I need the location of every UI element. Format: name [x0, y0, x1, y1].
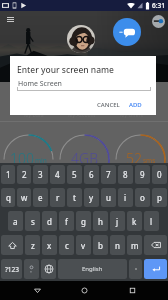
- button[interactable]: 6: [84, 165, 99, 184]
- button[interactable]: 2: [17, 165, 31, 184]
- staticText: 4: [55, 169, 60, 180]
- button[interactable]: Change language: [41, 259, 56, 279]
- button[interactable]: Home: [73, 281, 95, 300]
- staticText: l: [150, 216, 153, 227]
- button[interactable]: Space: [58, 259, 127, 279]
- staticText: 6:31: [152, 1, 165, 10]
- staticText: 8: [123, 169, 128, 180]
- button[interactable]: m: [127, 235, 142, 255]
- staticText: c: [65, 240, 69, 251]
- staticText: 5: [72, 169, 77, 180]
- staticText: p: [157, 192, 162, 203]
- button[interactable]: d: [42, 211, 57, 231]
- button[interactable]: k: [127, 211, 142, 231]
- button[interactable]: Period: [129, 259, 142, 279]
- button[interactable]: r: [50, 188, 65, 207]
- staticText: 6: [89, 169, 94, 180]
- staticText: English: [82, 265, 103, 273]
- button[interactable]: Symbols: [1, 259, 22, 279]
- staticText: 0: [157, 169, 162, 180]
- button[interactable]: y: [84, 188, 99, 207]
- staticText: d: [47, 216, 52, 227]
- button[interactable]: q: [1, 188, 15, 207]
- button[interactable]: h: [93, 211, 108, 231]
- staticText: 4GB: [71, 149, 98, 168]
- button[interactable]: 8: [118, 165, 133, 184]
- staticText: Home Screen: [18, 79, 62, 89]
- staticText: x: [47, 240, 52, 251]
- button[interactable]: Settings: [152, 15, 165, 28]
- button[interactable]: 3: [33, 165, 48, 184]
- button[interactable]: Back: [26, 281, 48, 300]
- button[interactable]: 52: [114, 135, 167, 165]
- staticText: 2: [22, 169, 27, 180]
- staticText: w: [21, 192, 28, 203]
- staticText: i: [124, 192, 127, 203]
- button[interactable]: Comma and emoji: [24, 259, 39, 279]
- button[interactable]: 0: [152, 165, 167, 184]
- staticText: CANCEL: [97, 101, 120, 109]
- button[interactable]: Backspace: [144, 235, 167, 255]
- staticText: q: [6, 192, 11, 203]
- staticText: sms: [143, 156, 156, 165]
- button[interactable]: b: [93, 235, 108, 255]
- button[interactable]: l: [144, 211, 159, 231]
- button[interactable]: i: [118, 188, 133, 207]
- staticText: t: [73, 192, 76, 203]
- staticText: o: [140, 192, 145, 203]
- button[interactable]: Menu: [5, 16, 16, 23]
- staticText: Enter your screen name: [17, 64, 114, 76]
- button[interactable]: 1: [1, 165, 15, 184]
- button[interactable]: x: [42, 235, 57, 255]
- button[interactable]: f: [59, 211, 74, 231]
- button[interactable]: Recent apps: [121, 281, 143, 300]
- button[interactable]: u: [101, 188, 116, 207]
- staticText: f: [65, 216, 68, 227]
- staticText: v: [81, 240, 86, 251]
- staticText: My Account: [68, 112, 96, 119]
- staticText: My Data: [24, 112, 44, 119]
- button[interactable]: 5: [67, 165, 82, 184]
- button[interactable]: p: [152, 188, 167, 207]
- staticText: e: [38, 192, 43, 203]
- button[interactable]: Profile photo: [67, 25, 95, 53]
- staticText: 52: [126, 149, 142, 168]
- button[interactable]: 9: [135, 165, 150, 184]
- button[interactable]: o: [135, 188, 150, 207]
- staticText: y: [89, 192, 94, 203]
- staticText: ?123: [5, 265, 19, 274]
- staticText: j: [116, 216, 119, 227]
- button[interactable]: Enter: [144, 259, 167, 279]
- staticText: a: [13, 216, 18, 227]
- staticText: g: [81, 216, 86, 227]
- button[interactable]: Messages: [113, 18, 141, 46]
- button[interactable]: a: [8, 211, 23, 231]
- button[interactable]: n: [110, 235, 125, 255]
- button[interactable]: 4GB: [58, 135, 111, 165]
- staticText: b: [98, 240, 103, 251]
- button[interactable]: z: [25, 235, 40, 255]
- button[interactable]: c: [59, 235, 74, 255]
- button[interactable]: 4: [50, 165, 65, 184]
- button[interactable]: 100: [2, 135, 55, 165]
- staticText: u: [106, 192, 111, 203]
- button[interactable]: v: [76, 235, 91, 255]
- button[interactable]: j: [110, 211, 125, 231]
- staticText: 1: [6, 169, 11, 180]
- button[interactable]: t: [67, 188, 82, 207]
- button[interactable]: 7: [101, 165, 116, 184]
- button[interactable]: Shift: [1, 235, 23, 255]
- button[interactable]: w: [17, 188, 31, 207]
- button[interactable]: e: [33, 188, 48, 207]
- staticText: r: [56, 192, 60, 203]
- button[interactable]: CANCEL: [93, 98, 124, 112]
- staticText: z: [31, 240, 35, 251]
- button[interactable]: s: [25, 211, 40, 231]
- button[interactable]: ADD: [125, 98, 146, 112]
- button[interactable]: g: [76, 211, 91, 231]
- staticText: My Offers: [120, 112, 144, 119]
- staticText: n: [115, 240, 120, 251]
- staticText: s: [31, 216, 35, 227]
- staticText: 3: [38, 169, 43, 180]
- staticText: k: [132, 216, 137, 227]
